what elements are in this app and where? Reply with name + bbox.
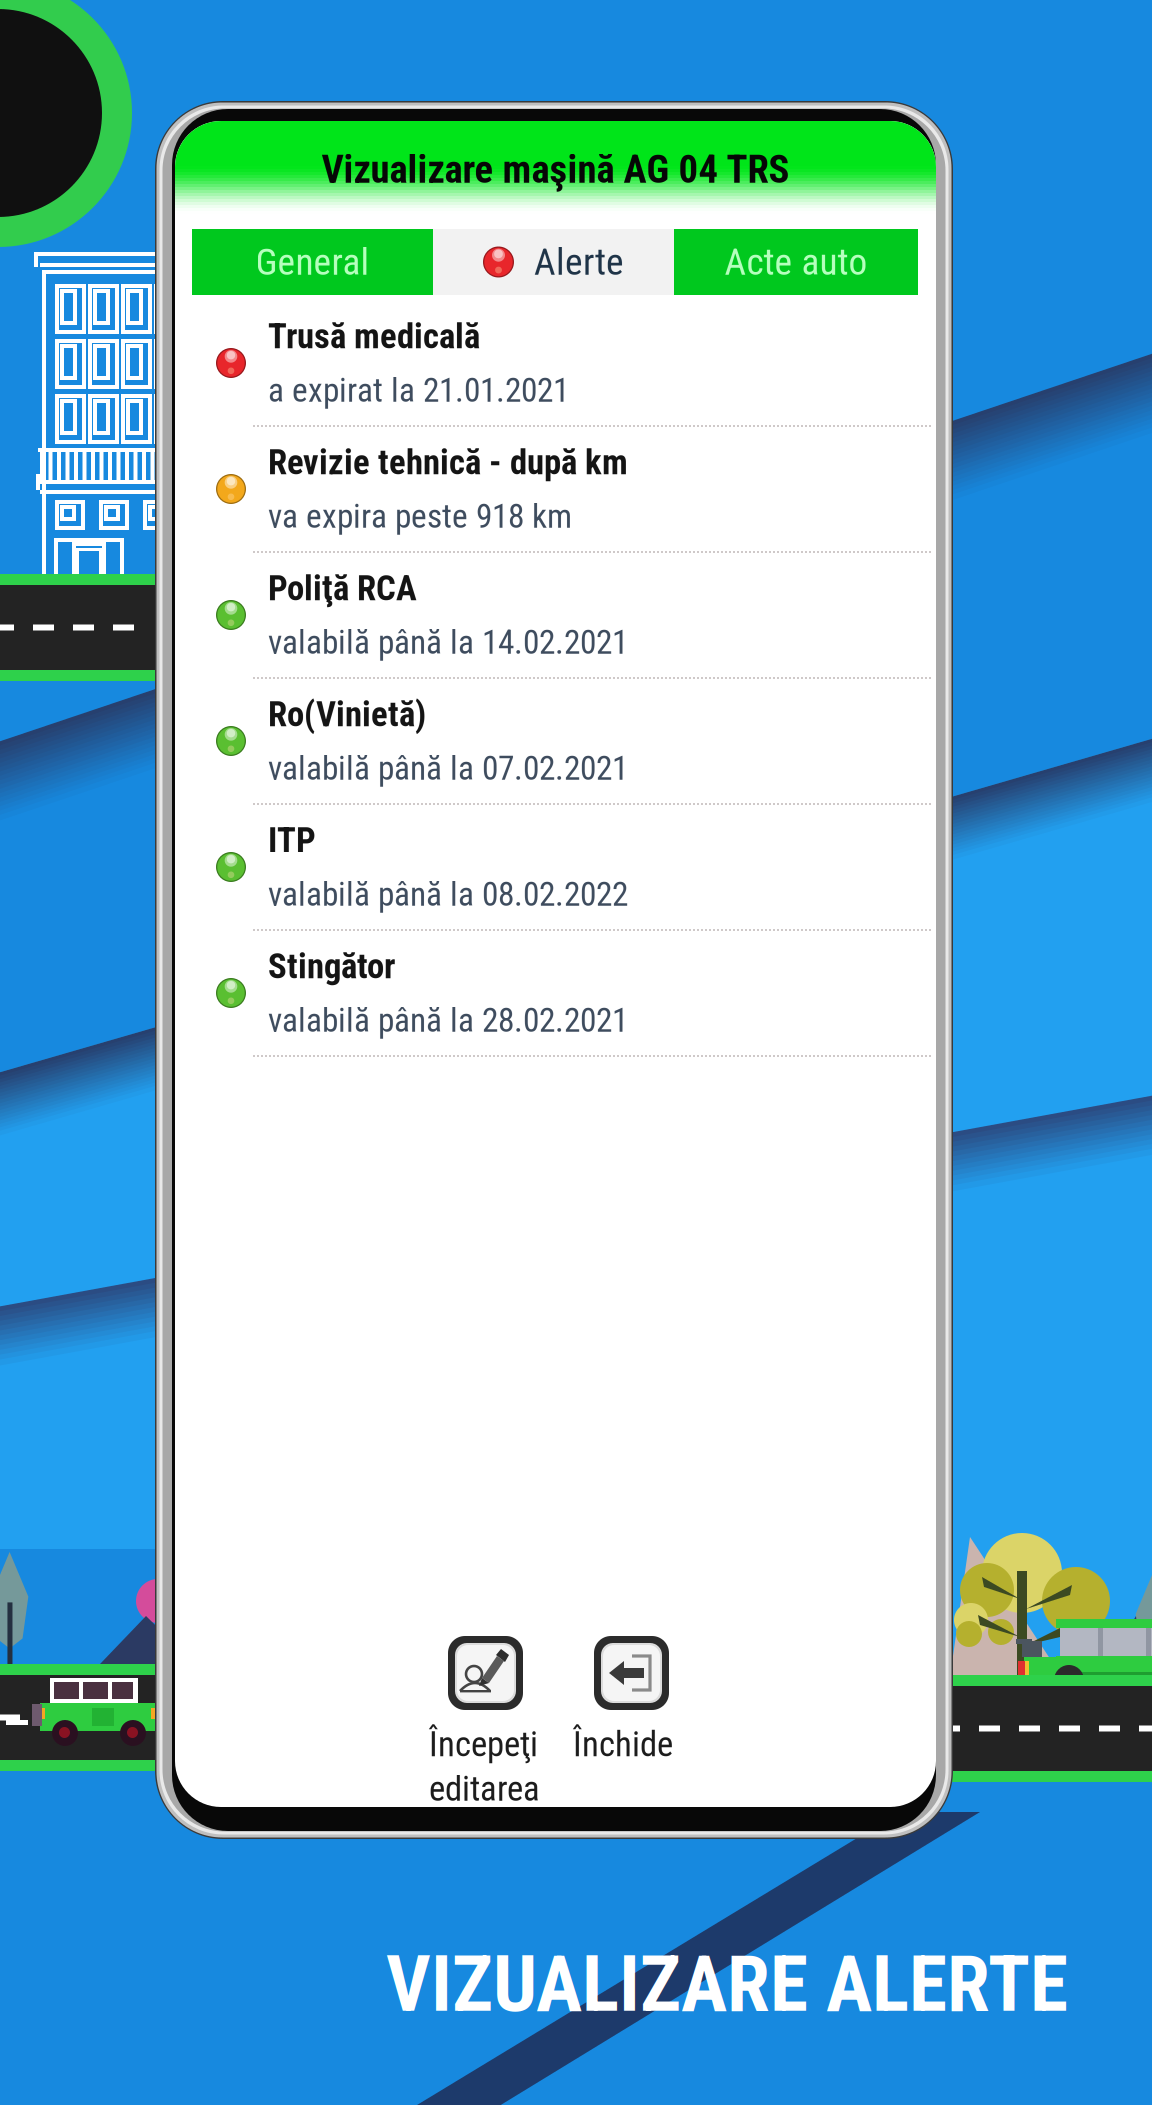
staticText: a expirat la 21.01.2021: [268, 371, 569, 410]
staticText: editarea: [429, 1769, 540, 1809]
staticText: ITP: [268, 820, 316, 861]
button[interactable]: General: [192, 229, 433, 295]
staticText: Alerte: [534, 240, 624, 284]
staticText: valabilă până la 08.02.2022: [268, 875, 628, 914]
staticText: valabilă până la 07.02.2021: [268, 749, 628, 788]
button[interactable]: Alerte: [433, 229, 674, 295]
staticText: va expira peste 918 km: [268, 497, 572, 536]
button[interactable]: Poliţă RCA: [175, 553, 936, 677]
staticText: Revizie tehnică - după km: [268, 442, 628, 483]
staticText: Poliţă RCA: [268, 568, 417, 609]
staticText: VIZUALIZARE ALERTE: [386, 1939, 1068, 2030]
staticText: Trusă medicală: [268, 316, 480, 357]
staticText: Închide: [573, 1724, 673, 1765]
staticText: General: [255, 240, 369, 284]
staticText: Acte auto: [724, 240, 867, 284]
button[interactable]: ITP: [175, 805, 936, 929]
staticText: Ro(Vinietă): [268, 694, 426, 735]
button[interactable]: Începeţi: [429, 1636, 581, 1791]
staticText: Începeţi: [429, 1724, 538, 1765]
staticText: Vizualizare maşină AG 04 TRS: [321, 147, 789, 192]
button[interactable]: Trusă medicală: [175, 301, 936, 425]
button[interactable]: Acte auto: [674, 229, 918, 295]
button[interactable]: Revizie tehnică - după km: [175, 427, 936, 551]
button[interactable]: Stingător: [175, 931, 936, 1055]
button[interactable]: Ro(Vinietă): [175, 679, 936, 803]
staticText: valabilă până la 14.02.2021: [268, 623, 628, 662]
staticText: valabilă până la 28.02.2021: [268, 1001, 628, 1040]
staticText: Stingător: [268, 946, 395, 987]
button[interactable]: Închide: [573, 1636, 715, 1751]
